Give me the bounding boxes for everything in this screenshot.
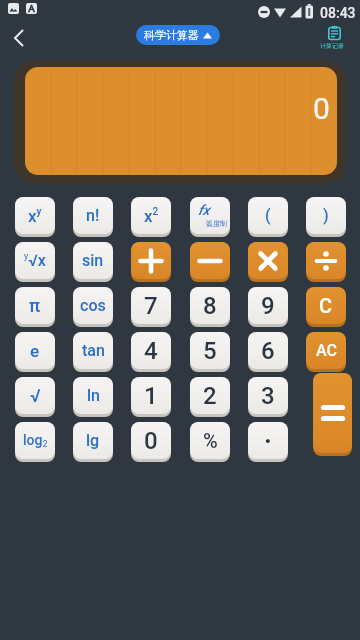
staticText: ( [265, 206, 271, 225]
staticText: ) [323, 206, 329, 225]
staticText: π [29, 295, 41, 316]
button[interactable] [318, 22, 350, 50]
button[interactable]: · [248, 422, 288, 462]
button[interactable]: π [15, 287, 55, 327]
staticText: log2 [23, 432, 48, 449]
staticText: fx [198, 202, 210, 218]
button[interactable]: sin [73, 242, 113, 282]
button[interactable] [313, 373, 352, 456]
staticText: 7 [144, 292, 158, 320]
button[interactable]: fx [190, 197, 230, 237]
button[interactable] [248, 242, 288, 282]
staticText: 3 [261, 382, 275, 410]
button[interactable] [131, 242, 171, 282]
button[interactable]: 4 [131, 332, 171, 372]
button[interactable]: log2 [15, 422, 55, 462]
staticText: 弧度制 [206, 219, 227, 228]
button[interactable]: ( [248, 197, 288, 237]
button[interactable]: tan [73, 332, 113, 372]
button[interactable]: 1 [131, 377, 171, 417]
staticText: tan [82, 341, 105, 360]
staticText: C [319, 294, 333, 317]
button[interactable]: xy [15, 197, 55, 237]
staticText: 0 [313, 91, 330, 126]
button[interactable]: √ [15, 377, 55, 417]
staticText: 4 [144, 337, 158, 365]
staticText: AC [316, 341, 337, 360]
button[interactable]: 2 [190, 377, 230, 417]
button[interactable]: x2 [131, 197, 171, 237]
button[interactable]: 6 [248, 332, 288, 372]
staticText: 0 [144, 427, 158, 455]
staticText: 2 [203, 382, 217, 410]
button[interactable]: 7 [131, 287, 171, 327]
staticText: sin [82, 251, 104, 270]
button[interactable]: n! [73, 197, 113, 237]
button[interactable]: 5 [190, 332, 230, 372]
button[interactable]: 科学计算器 [136, 25, 220, 45]
staticText: 计算记录 [320, 42, 344, 50]
staticText: lg [86, 431, 100, 450]
button[interactable]: 9 [248, 287, 288, 327]
staticText: 9 [261, 292, 275, 320]
staticText: 08:43 [320, 5, 356, 21]
button[interactable]: 0 [131, 422, 171, 462]
button[interactable] [6, 27, 34, 49]
button[interactable]: C [306, 287, 346, 327]
button[interactable]: y√x [15, 242, 55, 282]
staticText: 科学计算器 [144, 28, 199, 42]
button[interactable]: 3 [248, 377, 288, 417]
button[interactable]: 8 [190, 287, 230, 327]
staticText: % [203, 429, 218, 452]
button[interactable]: AC [306, 332, 346, 372]
button[interactable] [190, 242, 230, 282]
staticText: n! [86, 206, 100, 225]
button[interactable] [306, 242, 346, 282]
staticText: 8 [203, 292, 217, 320]
button[interactable]: ln [73, 377, 113, 417]
staticText: ln [87, 386, 100, 405]
staticText: 6 [261, 337, 275, 365]
staticText: 5 [203, 337, 217, 365]
button[interactable]: e [15, 332, 55, 372]
staticText: y√x [24, 251, 46, 270]
staticText: √ [30, 385, 41, 406]
staticText: x2 [144, 206, 159, 226]
staticText: cos [80, 296, 106, 315]
button[interactable]: cos [73, 287, 113, 327]
staticText: · [264, 426, 272, 456]
staticText: e [30, 341, 40, 361]
staticText: 1 [144, 382, 158, 410]
staticText: xy [28, 206, 42, 226]
button[interactable]: lg [73, 422, 113, 462]
button[interactable]: ) [306, 197, 346, 237]
button[interactable]: % [190, 422, 230, 462]
